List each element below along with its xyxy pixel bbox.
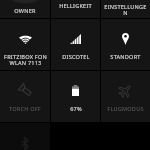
button[interactable]: HELLIGKEIT <box>51 0 100 18</box>
button[interactable]: TORCH OFF <box>0 71 50 122</box>
staticText: FLUGMODUS <box>107 105 144 113</box>
staticText: TORCH OFF <box>9 105 41 113</box>
button[interactable]: FLUGMODUS <box>101 71 150 122</box>
staticText: HELLIGKEIT <box>59 2 92 10</box>
staticText: OWNER <box>14 7 36 15</box>
button[interactable]: EINSTELLUNGEN <box>101 0 150 18</box>
staticText: STANDORT <box>110 53 141 61</box>
button[interactable]: 67% <box>51 71 100 122</box>
button[interactable]: DISCOTEL <box>51 19 100 70</box>
button[interactable]: FRITZ!BOX FON WLAN 7113 <box>0 19 50 70</box>
button[interactable]: STANDORT <box>101 19 150 70</box>
staticText: EINSTELLUNGEN <box>104 3 147 17</box>
staticText: 67% <box>70 105 82 113</box>
staticText: FRITZ!BOX FON WLAN 7113 <box>4 53 47 67</box>
button[interactable]: OWNER <box>0 0 50 18</box>
staticText: DISCOTEL <box>62 53 90 61</box>
